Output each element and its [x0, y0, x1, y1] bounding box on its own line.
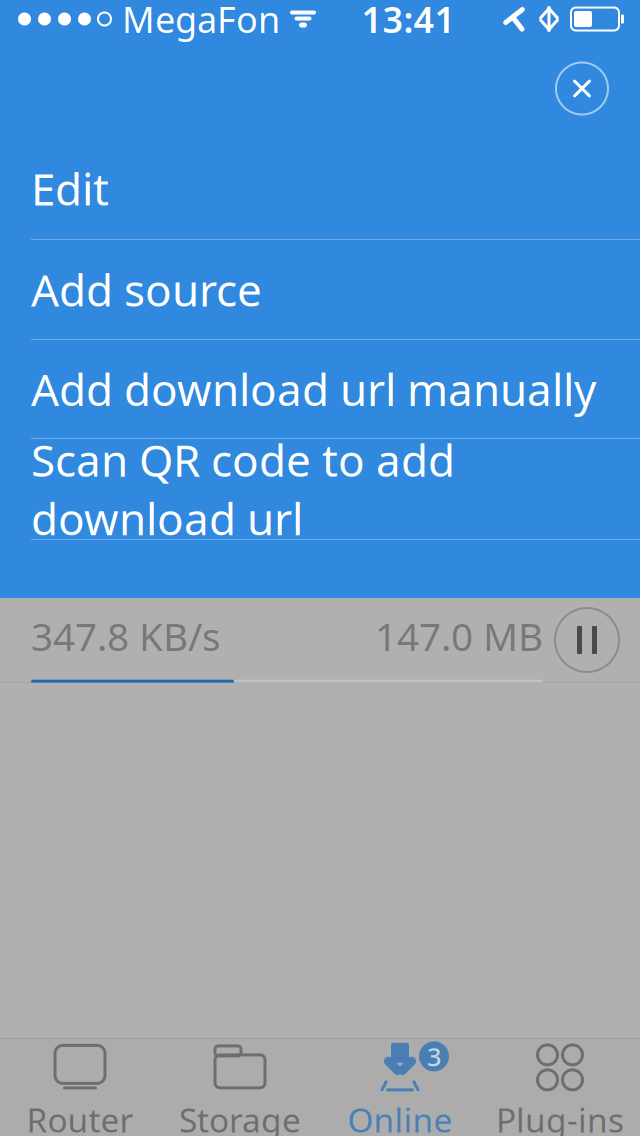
staticText: 347.8 KB/s	[31, 610, 221, 662]
staticText: Plug-ins	[496, 1097, 624, 1136]
staticText: Router	[26, 1097, 133, 1136]
button[interactable]: 347.8 KB/s	[0, 597, 640, 683]
button[interactable]: Scan QR code to add download url	[0, 439, 640, 539]
staticText: 3	[427, 1039, 441, 1073]
staticText: Online	[347, 1097, 452, 1136]
staticText: Storage	[179, 1097, 301, 1136]
staticText: 147.0 MB	[375, 610, 543, 662]
button[interactable]: Close	[546, 52, 618, 124]
staticText: Scan QR code to add download url	[31, 431, 455, 547]
button[interactable]: Plug-ins	[480, 1039, 640, 1136]
staticText: 13:41	[361, 0, 455, 43]
staticText: Add source	[31, 260, 262, 319]
button[interactable]: Add source	[0, 240, 640, 339]
button[interactable]: Router	[0, 1039, 160, 1136]
button[interactable]: Storage	[160, 1039, 320, 1136]
button[interactable]: Edit	[0, 138, 640, 239]
staticText: Edit	[31, 159, 109, 218]
button[interactable]: 3	[320, 1039, 480, 1136]
staticText: Add download url manually	[31, 360, 596, 418]
staticText: MegaFon	[122, 0, 280, 43]
button[interactable]: Add download url manually	[0, 340, 640, 438]
